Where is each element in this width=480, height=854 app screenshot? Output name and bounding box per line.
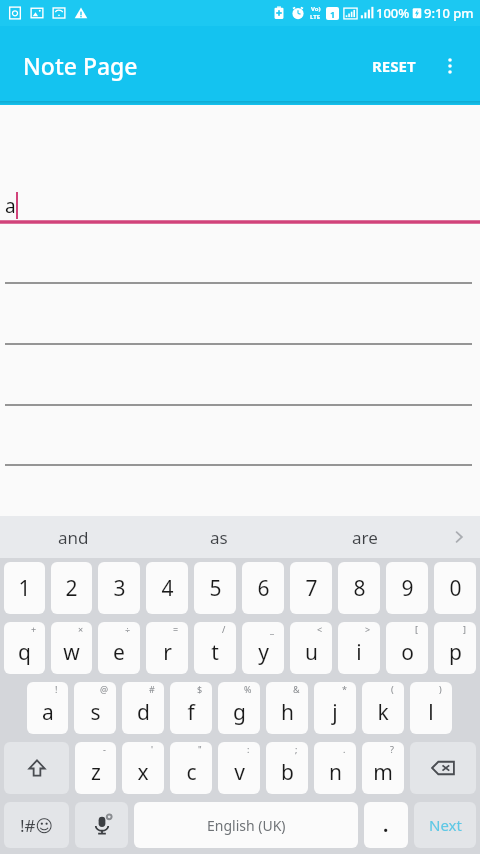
staticText: ]	[463, 623, 466, 635]
staticText: r	[163, 638, 172, 667]
staticText: 6	[257, 574, 270, 603]
staticText: a	[42, 698, 54, 727]
staticText: @	[100, 683, 109, 695]
button[interactable]: #	[122, 682, 164, 734]
button[interactable]: +	[4, 622, 45, 674]
button[interactable]: 1	[4, 562, 45, 614]
button[interactable]: @	[74, 682, 116, 734]
staticText: <	[317, 623, 323, 635]
staticText: o	[401, 638, 414, 667]
staticText: 7	[305, 574, 318, 603]
staticText: .	[383, 812, 389, 838]
staticText: &	[293, 683, 300, 695]
button[interactable]: Backspace	[410, 742, 476, 794]
button[interactable]: '	[122, 742, 164, 794]
staticText: "	[198, 743, 202, 755]
staticText: m	[373, 758, 393, 787]
staticText: g	[233, 698, 246, 727]
button[interactable]: ;	[266, 742, 308, 794]
staticText: ?	[390, 743, 394, 755]
staticText: f	[187, 698, 195, 727]
staticText: 100%	[376, 4, 410, 22]
staticText: are	[352, 526, 378, 549]
button[interactable]: *	[314, 682, 356, 734]
button[interactable]: :	[218, 742, 260, 794]
button[interactable]: More suggestions	[438, 516, 480, 558]
staticText: 1	[330, 8, 336, 20]
button[interactable]: Shift	[4, 742, 69, 794]
button[interactable]: _	[242, 622, 284, 674]
staticText: $	[197, 683, 203, 695]
staticText: z	[91, 758, 101, 787]
staticText: Vo)	[311, 5, 321, 13]
button[interactable]: are	[292, 516, 438, 558]
button[interactable]: >	[338, 622, 380, 674]
button[interactable]: )	[410, 682, 452, 734]
button[interactable]: 5	[194, 562, 236, 614]
button[interactable]: ×	[51, 622, 92, 674]
staticText: Note Page	[23, 50, 138, 81]
staticText: e	[113, 638, 125, 667]
button[interactable]: =	[146, 622, 188, 674]
button[interactable]: 7	[290, 562, 332, 614]
button[interactable]: Next	[414, 802, 476, 848]
button[interactable]: a	[0, 105, 480, 516]
staticText: w	[63, 638, 80, 667]
button[interactable]: <	[290, 622, 332, 674]
staticText: 5	[209, 574, 222, 603]
staticText: '	[151, 743, 154, 755]
button[interactable]: $	[170, 682, 212, 734]
staticText: *	[342, 683, 347, 695]
button[interactable]: More options	[426, 42, 474, 90]
staticText: :	[247, 743, 250, 755]
button[interactable]: 6	[242, 562, 284, 614]
staticText: =	[173, 623, 179, 635]
staticText: y	[258, 638, 269, 667]
button[interactable]: !	[27, 682, 68, 734]
staticText: 3	[113, 574, 126, 603]
staticText: LTE	[310, 13, 321, 21]
button[interactable]: .	[364, 802, 408, 848]
staticText: t	[211, 638, 219, 667]
button[interactable]: 0	[434, 562, 476, 614]
button[interactable]: /	[194, 622, 236, 674]
button[interactable]: Voice input	[75, 802, 128, 848]
button[interactable]: ?	[362, 742, 404, 794]
button[interactable]: 2	[51, 562, 92, 614]
button[interactable]: and	[0, 516, 146, 558]
button[interactable]: ÷	[98, 622, 140, 674]
staticText: 9:10 pm	[424, 4, 474, 22]
button[interactable]: [	[386, 622, 428, 674]
button[interactable]: RESET	[362, 46, 426, 86]
button[interactable]: &	[266, 682, 308, 734]
button[interactable]: (	[362, 682, 404, 734]
button[interactable]: -	[75, 742, 116, 794]
staticText: RESET	[372, 56, 416, 76]
staticText: i	[356, 638, 362, 667]
staticText: 8	[353, 574, 366, 603]
button[interactable]: 8	[338, 562, 380, 614]
button[interactable]: .	[314, 742, 356, 794]
button[interactable]: 4	[146, 562, 188, 614]
staticText: ×	[78, 623, 84, 635]
staticText: !#☺	[20, 814, 54, 837]
button[interactable]: 9	[386, 562, 428, 614]
button[interactable]: !#☺	[4, 802, 69, 848]
staticText: -	[103, 743, 106, 755]
staticText: +	[31, 623, 37, 635]
staticText: v	[234, 758, 245, 787]
staticText: Next	[429, 815, 462, 835]
button[interactable]: "	[170, 742, 212, 794]
button[interactable]: 3	[98, 562, 140, 614]
button[interactable]: English (UK)	[134, 802, 358, 848]
button[interactable]: %	[218, 682, 260, 734]
staticText: )	[439, 683, 442, 695]
staticText: a	[5, 193, 16, 219]
button[interactable]: as	[146, 516, 292, 558]
staticText: x	[137, 758, 149, 787]
staticText: ;	[295, 743, 298, 755]
staticText: n	[329, 758, 342, 787]
staticText: _	[270, 623, 274, 635]
button[interactable]: ]	[434, 622, 476, 674]
staticText: 0	[449, 574, 462, 603]
